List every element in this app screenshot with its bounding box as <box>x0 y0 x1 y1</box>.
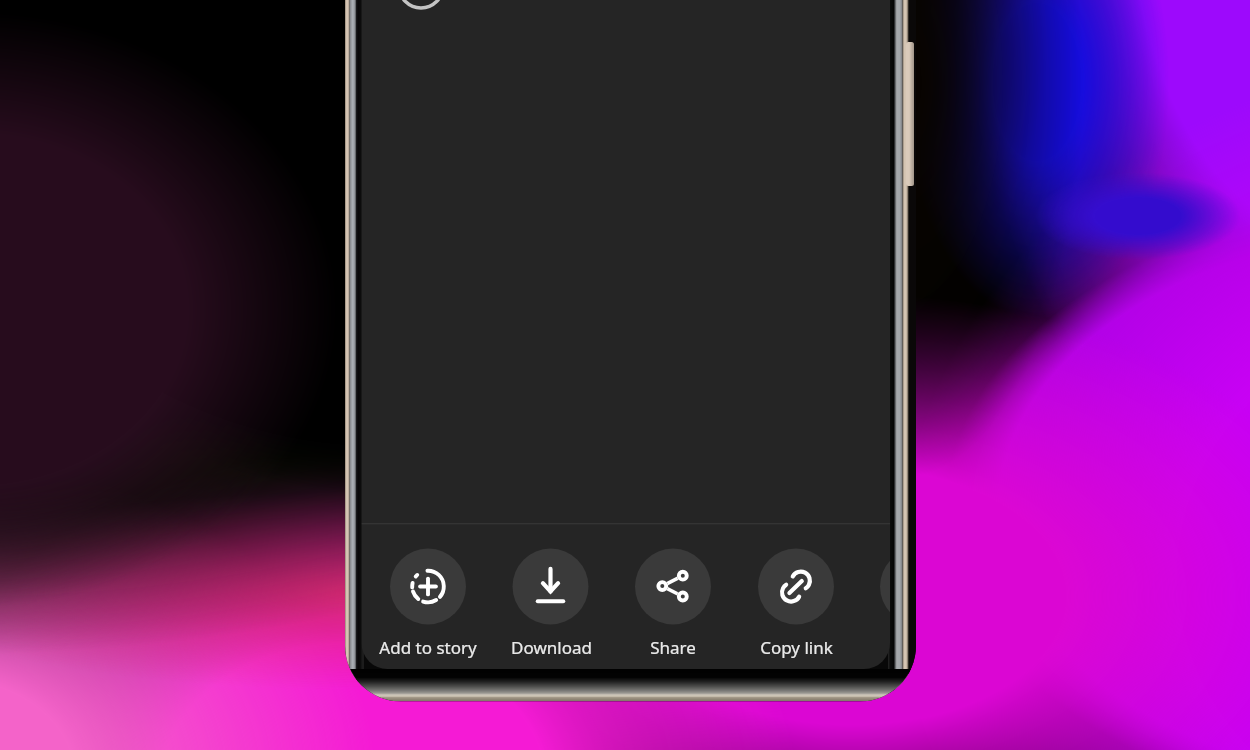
button[interactable]: Add to story <box>367 540 489 659</box>
button[interactable]: Copy link <box>735 540 857 659</box>
staticText: Download <box>511 636 592 659</box>
staticText: Add to story <box>379 636 477 659</box>
staticText: Share <box>650 636 696 659</box>
button[interactable]: Download <box>490 540 612 659</box>
button[interactable]: Share <box>612 540 734 659</box>
staticText: Copy link <box>760 636 833 659</box>
